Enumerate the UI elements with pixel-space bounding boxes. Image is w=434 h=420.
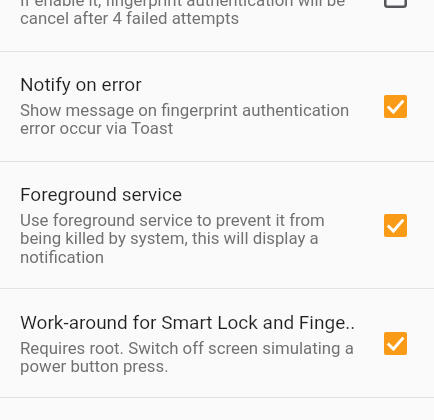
staticText: Use foreground service to prevent it fro… [20, 210, 358, 267]
button[interactable]: Notify on error [0, 52, 434, 161]
staticText: Foreground service [20, 183, 182, 205]
staticText: If enable it, fingerprint authentication… [20, 0, 358, 28]
button[interactable]: Foreground service, checked [384, 214, 407, 237]
staticText: Notify on error [20, 73, 142, 95]
button[interactable]: Work-around for Smart Lock and Finge.. [0, 289, 434, 397]
button[interactable]: Fingerprint lock, not checked [384, 0, 407, 8]
staticText: Work-around for Smart Lock and Finge.. [20, 311, 356, 333]
button[interactable]: Fingerprint lock [0, 0, 434, 51]
button[interactable]: Work-around for Smart Lock and Finge.., … [384, 332, 407, 355]
button[interactable]: Notify on error, checked [384, 95, 407, 118]
staticText: Requires root. Switch off screen simulat… [20, 338, 358, 376]
button[interactable]: Foreground service [0, 162, 434, 288]
staticText: Show message on fingerprint authenticati… [20, 100, 358, 138]
